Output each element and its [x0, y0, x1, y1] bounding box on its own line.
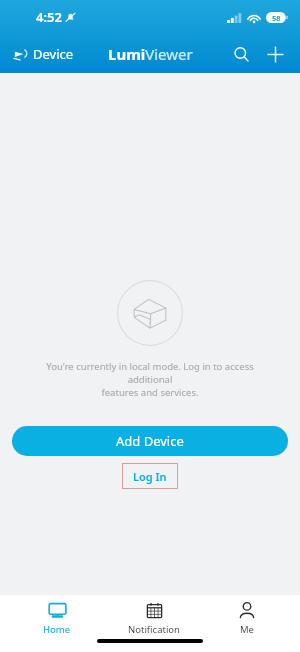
button[interactable]: Notification: [114, 597, 194, 639]
staticText: 58: [272, 13, 281, 23]
button[interactable]: Search: [224, 37, 258, 71]
staticText: Me: [240, 623, 254, 636]
staticText: Log In: [133, 469, 167, 484]
staticText: 4:52: [36, 8, 62, 26]
staticText: Notification: [128, 623, 180, 636]
button[interactable]: Home: [29, 597, 85, 639]
button[interactable]: Me: [223, 597, 271, 639]
button[interactable]: Device: [0, 39, 82, 69]
button[interactable]: Add Device: [12, 426, 288, 456]
staticText: Home: [43, 623, 71, 636]
button[interactable]: Log In: [122, 463, 178, 489]
staticText: Device: [33, 45, 74, 63]
staticText: LumiViewer: [108, 44, 193, 64]
staticText: Add Device: [116, 432, 184, 450]
staticText: You're currently in local mode. Log in t…: [28, 360, 272, 399]
button[interactable]: Add: [258, 37, 292, 71]
